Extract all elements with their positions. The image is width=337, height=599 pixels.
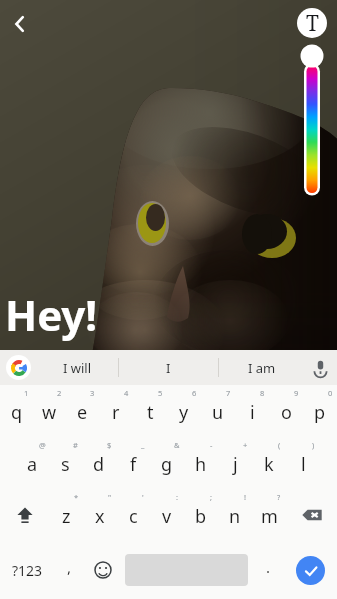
staticText: " xyxy=(108,492,112,502)
button[interactable] xyxy=(33,385,66,437)
staticText: # xyxy=(73,440,78,450)
staticText: ; xyxy=(210,492,213,502)
staticText: t xyxy=(147,400,154,425)
button[interactable]: I xyxy=(119,350,218,385)
button[interactable] xyxy=(116,489,150,541)
staticText: 8 xyxy=(260,388,265,398)
staticText: - xyxy=(210,440,213,450)
staticText: ) xyxy=(312,440,315,450)
staticText: p xyxy=(314,400,326,425)
button[interactable] xyxy=(269,385,303,437)
staticText: 3 xyxy=(90,388,95,398)
staticText: 7 xyxy=(226,388,231,398)
button[interactable]: , xyxy=(54,541,85,599)
staticText: m xyxy=(261,504,278,529)
staticText: i xyxy=(250,400,255,425)
staticText: 1 xyxy=(24,388,29,398)
staticText: b xyxy=(195,504,207,529)
button[interactable] xyxy=(99,385,133,437)
button[interactable] xyxy=(50,489,83,541)
button[interactable] xyxy=(286,437,320,489)
button[interactable]: Emoji xyxy=(85,541,120,599)
button[interactable] xyxy=(252,489,286,541)
button[interactable] xyxy=(150,489,184,541)
staticText: I xyxy=(166,359,171,377)
staticText: 6 xyxy=(192,388,197,398)
staticText: . xyxy=(266,557,271,577)
staticText: ' xyxy=(142,492,144,502)
staticText: a xyxy=(27,452,38,477)
staticText: : xyxy=(176,492,179,502)
staticText: f xyxy=(130,452,137,477)
button[interactable] xyxy=(252,437,286,489)
staticText: c xyxy=(129,504,138,529)
button[interactable]: Send xyxy=(284,541,337,599)
button[interactable] xyxy=(16,437,49,489)
staticText: , xyxy=(67,557,72,577)
staticText: ( xyxy=(278,440,281,450)
staticText: + xyxy=(243,440,248,450)
staticText: s xyxy=(61,452,70,477)
button[interactable]: Backspace xyxy=(286,489,337,541)
button[interactable] xyxy=(184,437,218,489)
staticText: 0 xyxy=(328,388,333,398)
staticText: Hey! xyxy=(5,286,98,343)
staticText: z xyxy=(62,504,71,529)
button[interactable] xyxy=(201,385,235,437)
staticText: r xyxy=(112,400,120,425)
button[interactable]: ?123 xyxy=(0,541,54,599)
button[interactable] xyxy=(218,489,252,541)
button[interactable]: I will xyxy=(36,350,118,385)
staticText: u xyxy=(212,400,224,425)
staticText: ? xyxy=(277,492,281,502)
staticText: k xyxy=(264,452,274,477)
button[interactable] xyxy=(235,385,269,437)
button[interactable]: I am xyxy=(219,350,304,385)
staticText: h xyxy=(195,452,207,477)
staticText: $ xyxy=(107,440,112,450)
staticText: ?123 xyxy=(12,561,43,580)
button[interactable] xyxy=(49,437,82,489)
button[interactable] xyxy=(167,385,201,437)
staticText: 2 xyxy=(57,388,62,398)
button[interactable] xyxy=(82,437,116,489)
button[interactable] xyxy=(66,385,99,437)
staticText: g xyxy=(161,452,173,477)
button[interactable] xyxy=(184,489,218,541)
staticText: d xyxy=(93,452,105,477)
staticText: j xyxy=(233,452,238,477)
button[interactable]: Google xyxy=(0,350,36,385)
staticText: ! xyxy=(244,492,247,502)
staticText: T xyxy=(306,9,319,38)
staticText: v xyxy=(162,504,172,529)
staticText: _ xyxy=(141,440,145,450)
button[interactable] xyxy=(133,385,167,437)
staticText: 4 xyxy=(124,388,129,398)
button[interactable] xyxy=(150,437,184,489)
staticText: 5 xyxy=(158,388,163,398)
staticText: @ xyxy=(39,440,46,450)
button[interactable]: Text tool xyxy=(297,8,327,38)
staticText: l xyxy=(301,452,306,477)
button[interactable] xyxy=(116,437,150,489)
button[interactable]: . xyxy=(253,541,284,599)
button[interactable] xyxy=(303,385,337,437)
button[interactable]: Color picker xyxy=(300,44,324,197)
button[interactable] xyxy=(83,489,116,541)
button[interactable]: Shift xyxy=(0,489,50,541)
button[interactable] xyxy=(0,385,33,437)
staticText: n xyxy=(229,504,241,529)
button[interactable]: Back xyxy=(5,9,35,39)
staticText: y xyxy=(179,400,189,425)
staticText: I am xyxy=(248,359,276,377)
button[interactable]: Voice input xyxy=(304,350,337,385)
staticText: w xyxy=(42,400,57,425)
staticText: q xyxy=(11,400,23,425)
staticText: & xyxy=(174,440,180,450)
staticText: o xyxy=(281,400,292,425)
staticText: I will xyxy=(63,359,92,377)
staticText: x xyxy=(95,504,105,529)
button[interactable] xyxy=(218,437,252,489)
staticText: 9 xyxy=(294,388,299,398)
